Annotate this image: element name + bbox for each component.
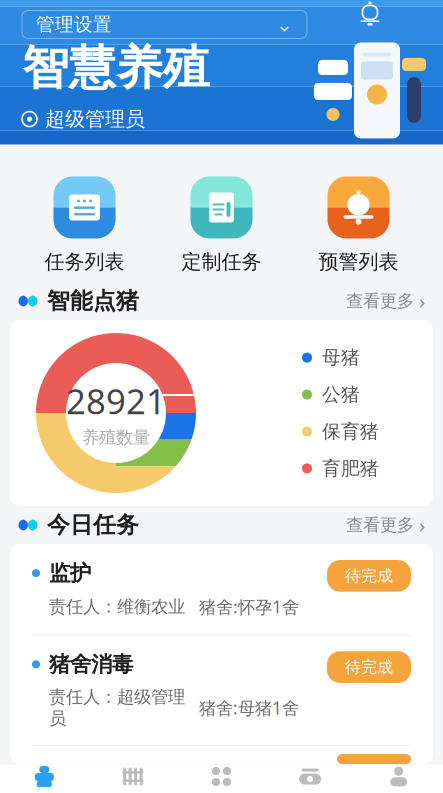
staticText: 责任人：超级管理员 <box>49 686 185 729</box>
staticText: 今日任务 <box>47 511 139 539</box>
staticText: 猪舍:母猪1舍 <box>199 696 299 719</box>
staticText: 公猪 <box>322 383 360 406</box>
staticText: 查看更多 <box>346 514 414 536</box>
staticText: › <box>419 288 425 314</box>
staticText: 养殖数量 <box>82 427 150 448</box>
staticText: 定制任务 <box>181 249 261 274</box>
button[interactable]: 我的 <box>354 764 443 793</box>
button[interactable]: 猪舍消毒 <box>10 635 433 745</box>
button[interactable]: 首页 <box>0 764 89 793</box>
staticText: 预警列表 <box>318 249 398 274</box>
staticText: 待完成 <box>345 566 393 586</box>
staticText: 智慧养殖 <box>22 39 210 97</box>
staticText: 监护 <box>49 560 91 586</box>
staticText: 任务列表 <box>44 249 124 274</box>
button[interactable]: 猪舍 <box>89 764 177 793</box>
button[interactable]: 通知 <box>353 0 387 30</box>
button[interactable]: 定制任务 <box>153 176 290 274</box>
button[interactable]: 查看更多 <box>346 288 425 314</box>
staticText: 猪舍消毒 <box>49 651 133 677</box>
staticText: 待完成 <box>345 657 393 677</box>
staticText: 育肥猪 <box>322 457 379 480</box>
staticText: 母猪 <box>322 346 360 369</box>
staticText: ⌄ <box>276 13 293 36</box>
staticText: 智能点猪 <box>47 287 139 315</box>
button[interactable]: 管理 <box>177 764 266 793</box>
button[interactable]: 预警列表 <box>290 176 427 274</box>
staticText: 超级管理员 <box>45 107 145 131</box>
button[interactable]: 查看更多 <box>346 512 425 538</box>
staticText: › <box>419 512 425 538</box>
button[interactable]: 设备 <box>266 764 354 793</box>
staticText: 责任人：维衡农业 <box>49 596 185 617</box>
button[interactable]: 任务列表 <box>16 176 153 274</box>
button[interactable]: 管理设置 <box>22 10 307 38</box>
staticText: 管理设置 <box>36 13 112 36</box>
staticText: 查看更多 <box>346 290 414 312</box>
staticText: 28921 <box>66 378 166 424</box>
button[interactable]: 监护 <box>10 544 433 634</box>
staticText: 保育猪 <box>322 420 379 443</box>
staticText: 猪舍:怀孕1舍 <box>199 595 299 618</box>
